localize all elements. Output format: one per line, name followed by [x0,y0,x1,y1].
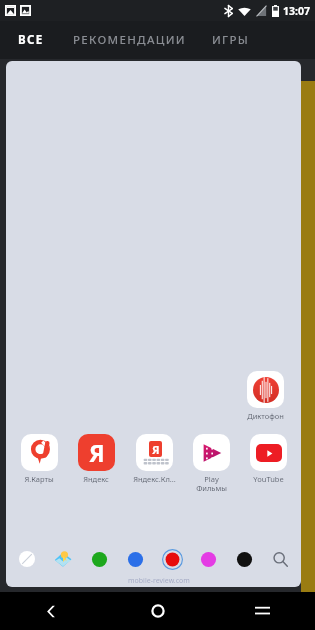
staticText: Я [152,442,160,457]
staticText: Яндекс.Кл... [133,474,176,484]
staticText: РЕКОМЕНДАЦИИ [73,32,186,48]
button[interactable]: ВСЕ [16,26,46,54]
button[interactable]: Назад [0,592,105,630]
button[interactable]: Красный [161,548,183,570]
staticText: YouTube [253,474,284,484]
staticText: 13:07 [283,4,310,18]
button[interactable]: YouTube [241,432,295,485]
button[interactable]: Я.Карты [12,432,66,485]
button[interactable]: Главный экран [105,592,210,630]
button[interactable]: Обои [52,548,74,570]
button[interactable]: Зелёный [88,548,110,570]
button[interactable]: Фиолетовый [197,548,219,570]
staticText: Диктофон [247,411,284,421]
staticText: ИГРЫ [212,32,250,48]
button[interactable]: Поиск [269,548,291,570]
staticText: Я.Карты [24,474,54,484]
button[interactable]: Синий [124,548,146,570]
staticText: Play Фильмы [196,474,227,493]
button[interactable]: Чёрный [233,548,255,570]
button[interactable]: ИГРЫ [210,26,252,54]
button[interactable]: Я [127,432,181,485]
button[interactable]: Диктофон [237,369,293,422]
button[interactable]: Обзор [210,592,315,630]
button[interactable]: Я [69,432,123,485]
button[interactable]: Play Фильмы [184,432,238,494]
button[interactable]: РЕКОМЕНДАЦИИ [71,26,188,54]
staticText: Яндекс [83,474,109,484]
staticText: mobile-review.com [128,576,190,586]
staticText: Я [89,437,105,468]
staticText: ВСЕ [18,32,44,48]
button[interactable]: Без цвета [16,548,38,570]
